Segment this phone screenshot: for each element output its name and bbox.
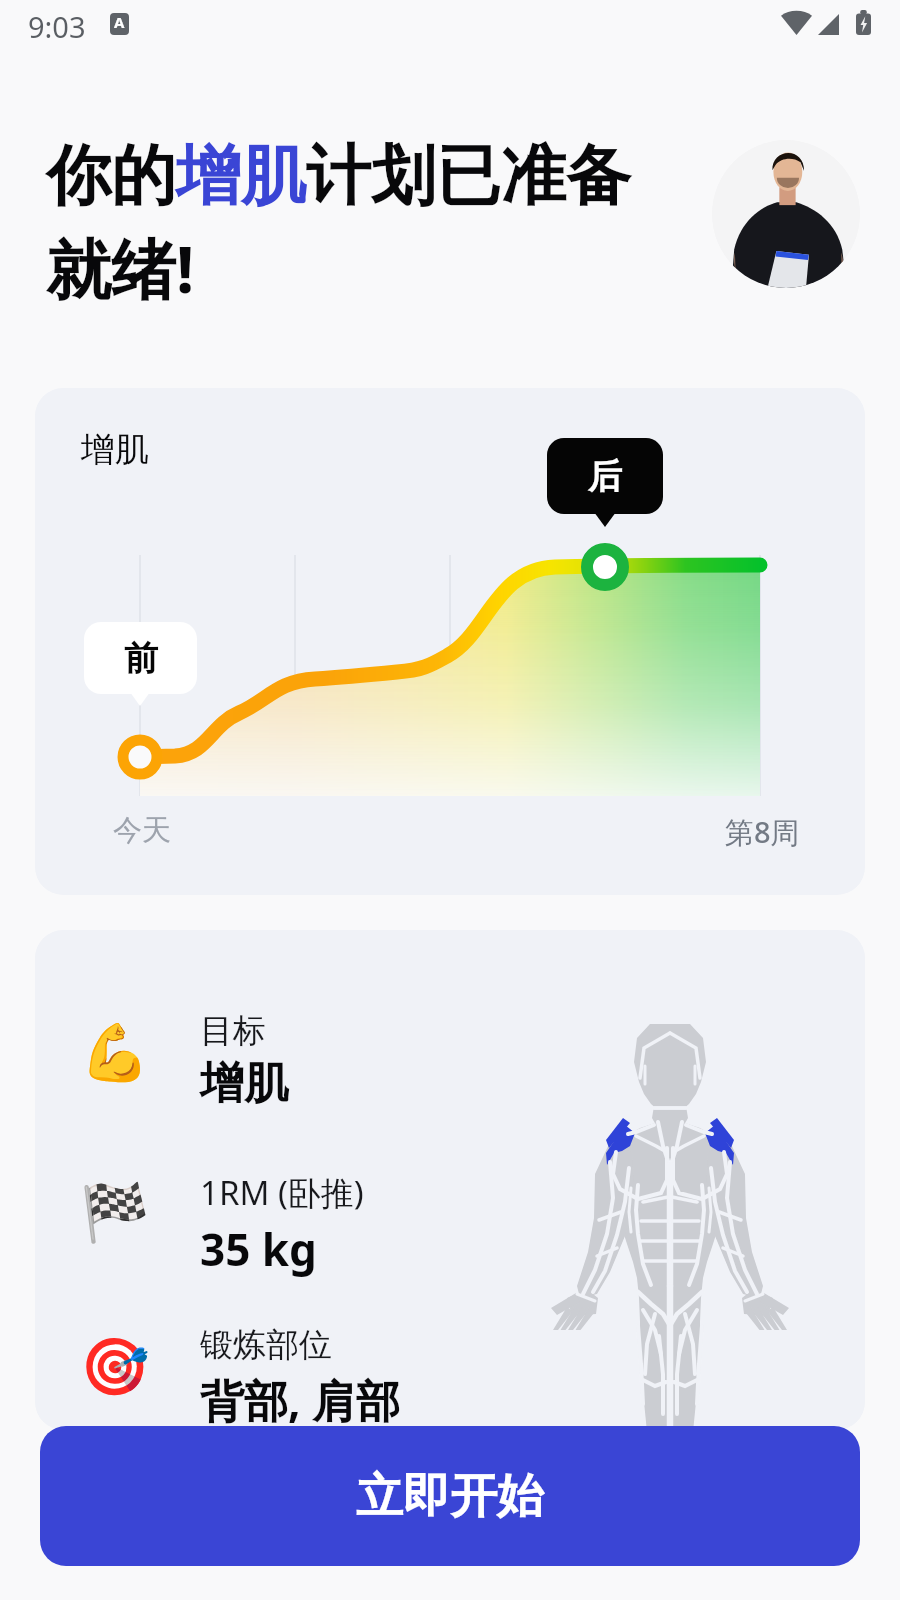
staticText: 增肌 <box>81 428 149 471</box>
staticText: 锻炼部位 <box>200 1324 332 1366</box>
staticText: 💪 <box>80 1020 150 1086</box>
staticText: 增肌 <box>200 1056 288 1111</box>
button[interactable]: 立即开始 <box>40 1426 860 1566</box>
staticText: 今天 <box>113 812 171 849</box>
staticText: 立即开始 <box>356 1467 544 1526</box>
staticText: 35 kg <box>200 1219 317 1279</box>
staticText: 背部, 肩部 <box>200 1370 400 1430</box>
staticText: 目标 <box>200 1010 266 1052</box>
staticText: A <box>114 13 125 32</box>
staticText: 🏁 <box>80 1180 150 1246</box>
staticText: 1RM (卧推) <box>200 1170 364 1215</box>
staticText: 前 <box>124 637 158 680</box>
other: Coach profile photo <box>712 140 860 288</box>
staticText: 🎯 <box>80 1334 150 1400</box>
staticText: 第8周 <box>725 812 800 852</box>
staticText: 你的增肌计划已准备就绪! <box>46 135 654 313</box>
staticText: 9:03 <box>28 7 86 46</box>
staticText: 后 <box>588 455 622 498</box>
